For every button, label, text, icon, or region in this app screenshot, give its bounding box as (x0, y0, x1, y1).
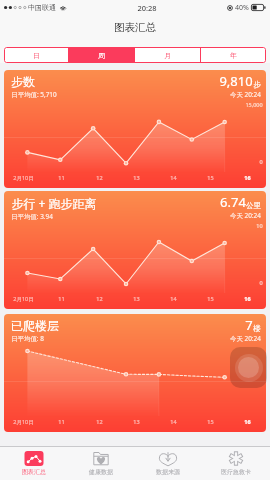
staticText: 日 (33, 51, 40, 60)
staticText: 11 (58, 174, 65, 181)
staticText: 医疗急救卡 (221, 468, 251, 476)
staticText: 已爬楼层 (11, 318, 59, 333)
staticText: 9,810 (219, 72, 253, 90)
staticText: 15 (207, 418, 214, 425)
staticText: 图表汇总 (22, 468, 46, 476)
button[interactable]: 医疗急救卡 (202, 447, 270, 480)
button[interactable]: AssistiveTouch (230, 347, 267, 388)
staticText: 年 (230, 51, 237, 60)
staticText: 14 (170, 174, 177, 181)
button[interactable]: 周 (69, 47, 134, 63)
staticText: 2月10日 (13, 174, 34, 182)
staticText: 13 (133, 174, 140, 181)
staticText: 15,000 (245, 101, 263, 108)
staticText: 步 (253, 80, 261, 89)
button[interactable]: 步行 + 跑步距离 (4, 191, 266, 309)
staticText: 今天 20:24 (230, 90, 261, 99)
staticText: 图表汇总 (114, 21, 156, 34)
button[interactable]: 健康数据 (67, 447, 134, 480)
staticText: 中国联通 (28, 3, 56, 12)
button[interactable]: 图表汇总 (0, 447, 67, 480)
staticText: 月 (164, 51, 171, 60)
staticText: 日平均值: 8 (11, 334, 44, 343)
staticText: 40% (235, 3, 249, 13)
staticText: 15 (207, 295, 214, 302)
button[interactable]: 年 (201, 47, 266, 63)
staticText: 0 (259, 279, 263, 286)
staticText: 14 (170, 418, 177, 425)
button[interactable]: 日 (4, 47, 68, 63)
staticText: 12 (96, 295, 103, 302)
staticText: 15 (207, 174, 214, 181)
staticText: 今天 20:24 (230, 211, 261, 220)
staticText: 步数 (11, 74, 35, 89)
staticText: 20:28 (137, 3, 157, 13)
staticText: 2月10日 (13, 295, 34, 303)
staticText: 日平均值: 5,710 (11, 90, 57, 99)
staticText: 步行 + 跑步距离 (11, 195, 97, 211)
staticText: 6.74 (220, 193, 246, 211)
button[interactable]: 已爬楼层 (4, 314, 266, 432)
staticText: 10 (256, 222, 263, 229)
staticText: 日平均值: 3.94 (11, 212, 53, 221)
staticText: 12 (96, 418, 103, 425)
staticText: 11 (58, 418, 65, 425)
staticText: 16 (244, 174, 251, 181)
staticText: 12 (96, 174, 103, 181)
staticText: 16 (244, 295, 251, 302)
staticText: 7 (245, 316, 253, 334)
button[interactable]: 步数 (4, 70, 266, 188)
staticText: 2月10日 (13, 418, 34, 426)
staticText: 健康数据 (89, 468, 113, 476)
button[interactable]: 数据来源 (134, 447, 202, 480)
staticText: 11 (58, 295, 65, 302)
staticText: 13 (133, 295, 140, 302)
staticText: 公里 (246, 201, 261, 210)
staticText: 0 (259, 158, 263, 165)
staticText: 13 (133, 418, 140, 425)
staticText: 今天 20:24 (230, 334, 261, 343)
staticText: 14 (170, 295, 177, 302)
staticText: 楼 (253, 324, 261, 333)
button[interactable]: 月 (135, 47, 200, 63)
staticText: 16 (244, 418, 251, 425)
staticText: 周 (98, 51, 105, 60)
staticText: 数据来源 (156, 468, 180, 476)
